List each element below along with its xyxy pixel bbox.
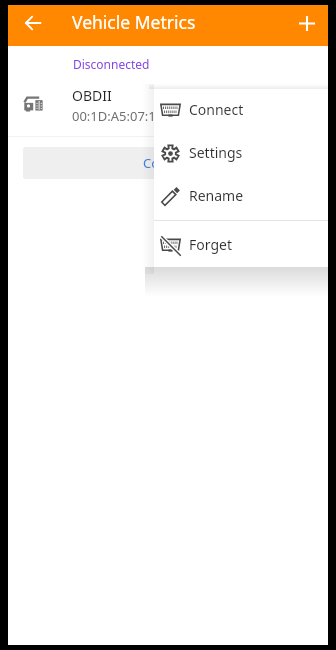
staticText: 00:1D:A5:07:1E:64: [72, 107, 182, 125]
staticText: Rename: [189, 186, 244, 205]
button[interactable]: Settings: [154, 132, 328, 175]
staticText: Connect: [143, 154, 194, 172]
staticText: Settings: [189, 143, 243, 162]
staticText: Connect: [189, 100, 244, 119]
button[interactable]: Add: [289, 5, 325, 41]
button[interactable]: OBDII: [8, 80, 328, 127]
staticText: OBDII: [72, 86, 112, 105]
button[interactable]: Rename: [154, 175, 328, 218]
button[interactable]: Back: [15, 5, 51, 41]
button[interactable]: Connect: [154, 89, 328, 132]
staticText: Forget: [189, 235, 232, 254]
button[interactable]: Forget: [154, 224, 328, 267]
staticText: Disconnected: [73, 56, 150, 72]
staticText: Vehicle Metrics: [72, 10, 196, 34]
button[interactable]: Connect: [23, 147, 313, 179]
